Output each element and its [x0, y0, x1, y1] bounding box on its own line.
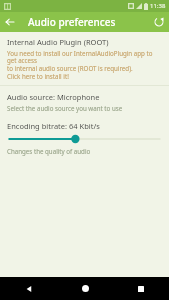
- button[interactable]: Audio source: Microphone: [0, 86, 169, 117]
- staticText: Internal Audio Plugin (ROOT): [7, 37, 109, 47]
- staticText: Encoding bitrate: 64 Kbit/s: [7, 121, 100, 131]
- button[interactable]: Internal Audio Plugin (ROOT): [0, 32, 169, 85]
- button[interactable]: Back: [0, 12, 20, 32]
- staticText: Select the audio source you want to use: [7, 104, 123, 112]
- button[interactable]: Back: [0, 277, 57, 300]
- button[interactable]: Refresh: [149, 12, 169, 32]
- button[interactable]: Home: [57, 277, 113, 300]
- staticText: You need to install our InternalAudioPlu…: [7, 49, 162, 81]
- staticText: 11:38: [150, 2, 166, 10]
- staticText: Audio preferences: [28, 15, 116, 29]
- button[interactable]: Recent apps: [113, 277, 169, 300]
- staticText: Audio source: Microphone: [7, 92, 100, 102]
- staticText: Changes the quality of audio: [7, 147, 91, 155]
- button[interactable]: Encoding bitrate slider: [7, 134, 162, 144]
